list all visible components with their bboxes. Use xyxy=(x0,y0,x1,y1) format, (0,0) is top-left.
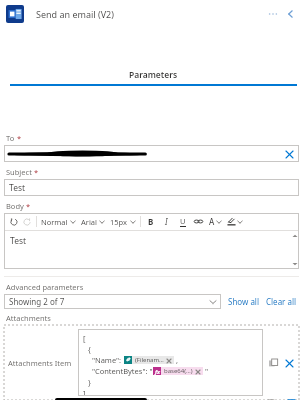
button[interactable]: Font color xyxy=(209,216,222,227)
button[interactable]: Collapse xyxy=(283,6,299,22)
staticText: } xyxy=(88,377,91,387)
staticText: " xyxy=(205,366,209,376)
button[interactable]: Show all xyxy=(228,296,259,307)
button[interactable]: Showing 2 of 7 xyxy=(4,294,221,309)
staticText: "ContentBytes": " xyxy=(88,366,153,376)
staticText: * xyxy=(34,167,39,177)
staticText: "Name": xyxy=(88,355,124,365)
staticText: Showing 2 of 7 xyxy=(9,296,209,307)
button[interactable]: Remove attachments item xyxy=(283,357,295,369)
staticText: Attachments Item xyxy=(8,358,78,368)
staticText: U xyxy=(180,216,186,226)
staticText: , xyxy=(176,355,179,365)
button[interactable]: Redo xyxy=(20,215,33,228)
staticText: * xyxy=(17,133,22,143)
button[interactable]: Parameters xyxy=(4,69,303,86)
staticText: (Filenam… xyxy=(135,356,164,364)
staticText: Send an email (V2) xyxy=(36,8,114,20)
button[interactable]: Clear all xyxy=(266,296,297,307)
staticText: [ xyxy=(83,333,86,343)
staticText: Test xyxy=(10,235,27,247)
staticText: Parameters xyxy=(129,69,178,81)
staticText: 15px xyxy=(110,217,128,227)
staticText: { xyxy=(88,344,91,354)
staticText: 𝒆 xyxy=(126,357,130,363)
staticText: A xyxy=(209,216,215,227)
staticText: Subject xyxy=(6,167,32,177)
button[interactable]: Test xyxy=(4,179,299,196)
button[interactable]: Insert link xyxy=(193,216,204,227)
button[interactable]: Underline xyxy=(177,216,188,227)
button[interactable]: Highlight color xyxy=(227,217,243,226)
staticText: Test xyxy=(9,182,26,194)
staticText: Normal xyxy=(41,217,68,227)
button[interactable]: Copy attachments item xyxy=(267,357,279,369)
button[interactable]: Clear To field xyxy=(283,148,295,160)
staticText: fx xyxy=(155,368,160,375)
staticText: Arial xyxy=(81,217,97,227)
button[interactable]: 15px xyxy=(110,217,136,227)
button[interactable]: Clear To field xyxy=(4,145,299,162)
staticText: To xyxy=(6,133,15,143)
button[interactable]: Normal xyxy=(41,217,76,227)
button[interactable]: Remove token xyxy=(166,358,171,363)
button[interactable]: [ xyxy=(83,332,263,396)
staticText: ] xyxy=(83,388,86,396)
staticText: Advanced parameters xyxy=(6,282,84,292)
staticText: B xyxy=(148,216,154,227)
staticText: * xyxy=(26,201,31,211)
staticText: Body xyxy=(6,201,24,211)
button[interactable]: Send an email connector icon xyxy=(6,5,24,23)
button[interactable]: Bold xyxy=(145,216,156,227)
button[interactable]: Undo xyxy=(7,215,20,228)
button[interactable]: Italic xyxy=(161,216,172,227)
staticText: I xyxy=(165,216,168,227)
button[interactable]: Arial xyxy=(81,217,105,227)
button[interactable]: More commands xyxy=(265,6,281,22)
staticText: base64(…) xyxy=(164,367,193,375)
button[interactable]: Remove token xyxy=(195,369,200,374)
button[interactable]: Test xyxy=(4,231,299,269)
staticText: Attachments xyxy=(6,313,51,323)
